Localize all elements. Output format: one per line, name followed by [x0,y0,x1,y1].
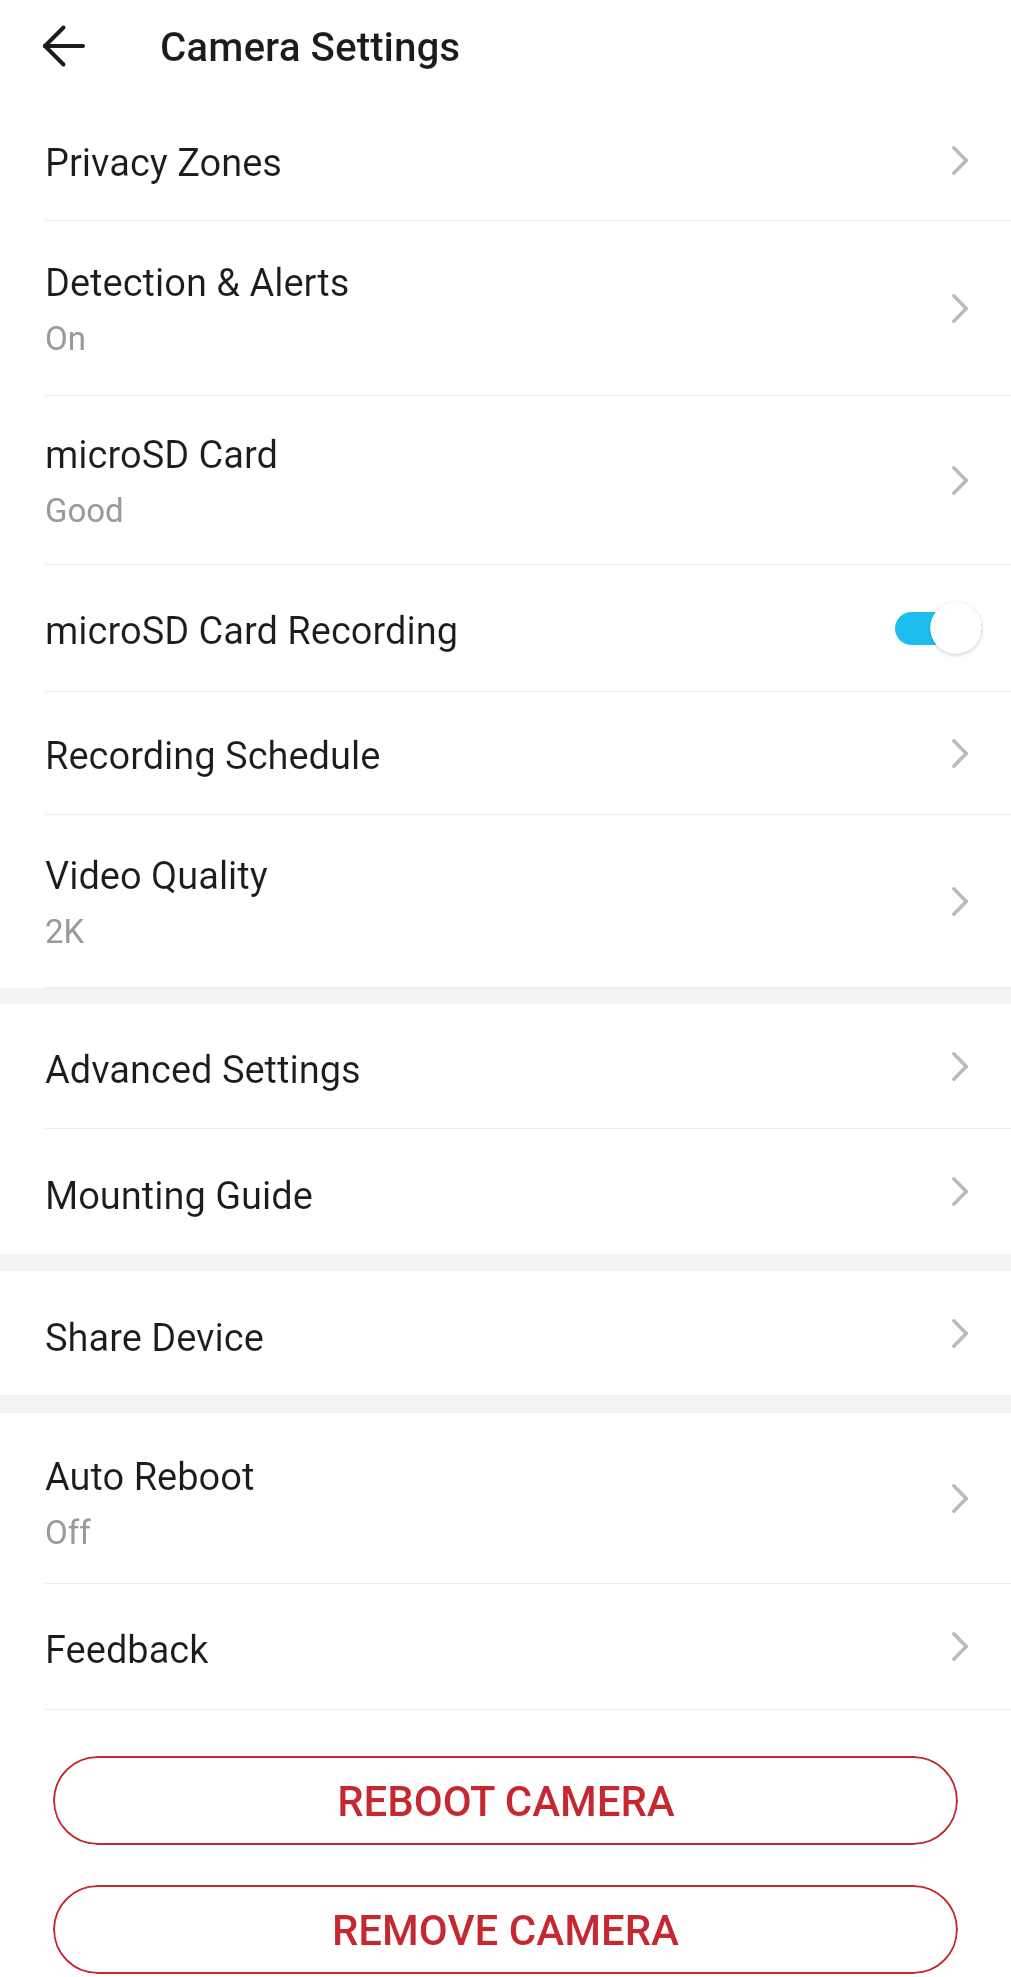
staticText: Privacy Zones [45,141,282,186]
staticText: REMOVE CAMERA [332,1906,679,1955]
staticText: microSD Card [45,433,278,478]
button[interactable]: Feedback [0,1584,1011,1709]
button[interactable]: Share Device [0,1271,1011,1395]
staticText: Auto Reboot [45,1455,255,1500]
staticText: Off [45,1513,91,1552]
button[interactable]: Video Quality [0,815,1011,987]
button[interactable]: Detection & Alerts [0,221,1011,395]
staticText: Good [45,491,124,530]
staticText: Camera Settings [160,24,461,71]
staticText: REBOOT CAMERA [337,1777,675,1826]
button[interactable]: Recording Schedule [0,692,1011,814]
button[interactable]: Privacy Zones [0,100,1011,220]
staticText: microSD Card Recording [45,609,458,654]
staticText: Detection & Alerts [45,261,350,306]
button[interactable]: Advanced Settings [0,1004,1011,1128]
button[interactable]: Auto Reboot [0,1413,1011,1583]
staticText: On [45,319,86,358]
button[interactable]: microSD Card Recording toggle [892,600,982,656]
button[interactable]: REMOVE CAMERA [53,1885,958,1974]
staticText: Recording Schedule [45,734,381,779]
button[interactable]: Back [24,6,104,86]
button[interactable]: microSD Card [0,396,1011,564]
staticText: 2K [45,912,85,951]
button[interactable]: microSD Card Recording [0,565,1011,691]
button[interactable]: REBOOT CAMERA [53,1756,958,1845]
staticText: Feedback [45,1628,209,1673]
staticText: Advanced Settings [45,1048,361,1093]
staticText: Share Device [45,1316,264,1361]
staticText: Mounting Guide [45,1174,313,1219]
staticText: Video Quality [45,854,268,899]
button[interactable]: Mounting Guide [0,1129,1011,1254]
